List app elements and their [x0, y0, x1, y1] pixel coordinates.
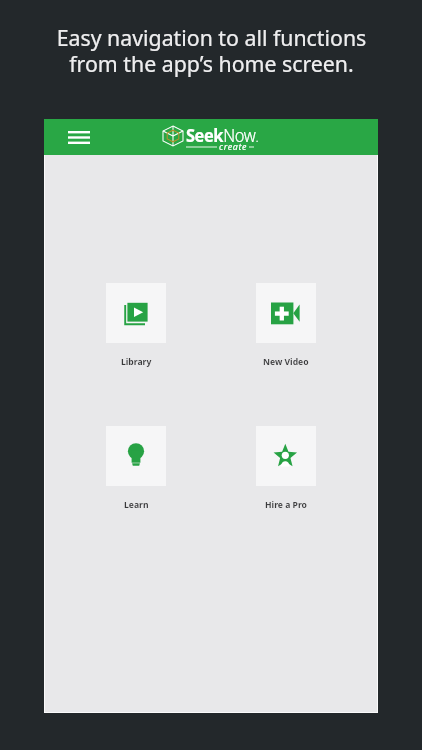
staticText: create	[219, 141, 248, 153]
staticText: Easy navigation to all functions from th…	[56, 22, 366, 78]
staticText: Hire a Pro	[265, 499, 307, 511]
button[interactable]: Menu	[66, 124, 92, 150]
button[interactable]: Seek	[163, 123, 259, 151]
staticText: Now	[223, 123, 256, 148]
staticText: Learn	[124, 499, 149, 511]
button[interactable]: Library	[106, 283, 166, 368]
staticText: Library	[121, 356, 152, 368]
button[interactable]: Learn	[106, 426, 166, 511]
button[interactable]: Hire a Pro	[256, 426, 316, 511]
button[interactable]: New Video	[256, 283, 316, 368]
staticText: New Video	[263, 356, 309, 368]
staticText: .	[256, 132, 259, 144]
staticText: Seek	[186, 123, 223, 148]
